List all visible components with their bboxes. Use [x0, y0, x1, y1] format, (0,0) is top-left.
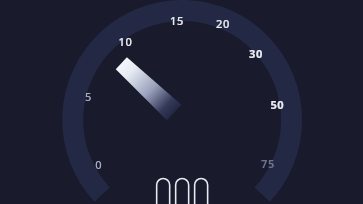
button[interactable]: Speed test gauge — [0, 0, 363, 204]
